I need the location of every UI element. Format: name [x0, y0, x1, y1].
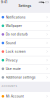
- button[interactable]: Use mute: [0, 64, 50, 73]
- staticText: Do not disturb: [6, 32, 28, 36]
- button[interactable]: Lock screen: [0, 47, 50, 56]
- staticText: Lock screen: [6, 50, 26, 54]
- button[interactable]: Sound: [0, 39, 50, 47]
- staticText: Sound: [6, 41, 16, 45]
- staticText: Privacy: [6, 58, 18, 62]
- button[interactable]: Do not disturb: [0, 30, 50, 39]
- staticText: ACCOUNTS: [2, 85, 18, 87]
- staticText: Wallpaper: [6, 24, 22, 28]
- button[interactable]: Additional settings: [0, 73, 50, 82]
- button[interactable]: Notifications: [0, 13, 50, 21]
- staticText: Use mute: [6, 67, 21, 71]
- button[interactable]: Wallpaper: [0, 21, 50, 30]
- staticText: Mi Account: [6, 94, 24, 98]
- staticText: Additional settings: [6, 75, 36, 79]
- staticText: Notifications: [6, 15, 26, 19]
- staticText: 9:41: [1, 0, 7, 4]
- button[interactable]: Privacy: [0, 56, 50, 64]
- staticText: Settings: [18, 4, 31, 8]
- button[interactable]: Mi Account: [0, 92, 50, 100]
